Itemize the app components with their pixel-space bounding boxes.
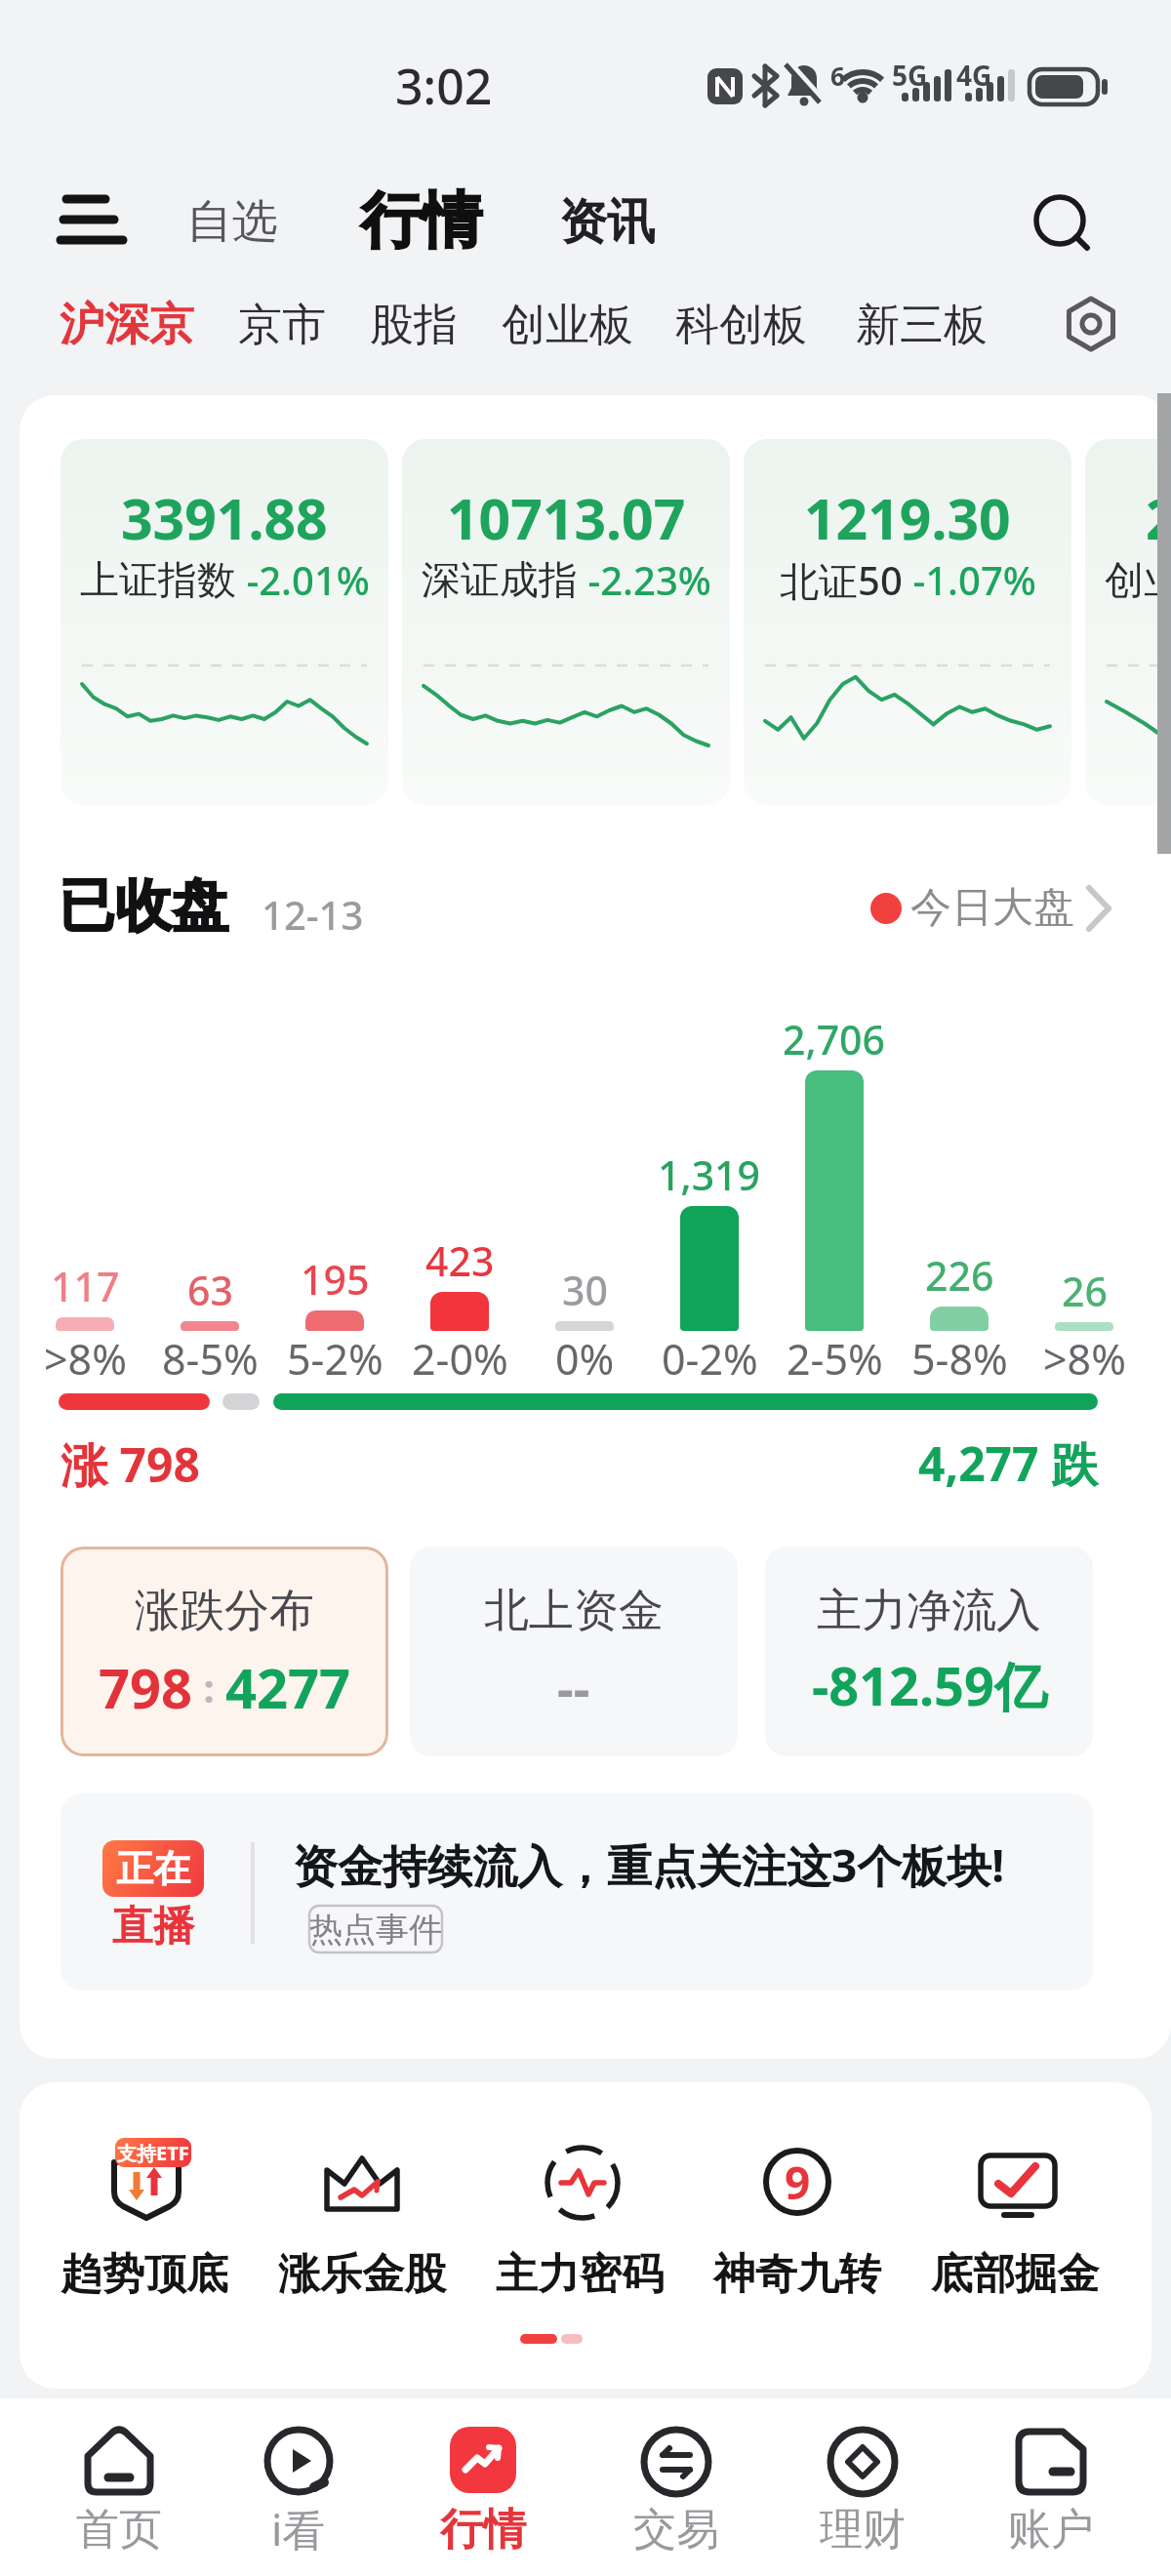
button[interactable] bbox=[482, 2117, 677, 2322]
staticText: 798 bbox=[99, 1650, 193, 1724]
button[interactable] bbox=[965, 2402, 1137, 2570]
button[interactable] bbox=[61, 193, 131, 248]
staticText: 创业板 bbox=[502, 298, 633, 353]
staticText: 5-8% bbox=[911, 1330, 1008, 1388]
button[interactable] bbox=[859, 873, 1132, 944]
staticText: 热点事件 bbox=[309, 1909, 442, 1951]
button[interactable] bbox=[700, 2117, 895, 2322]
staticText: 0% bbox=[555, 1330, 615, 1388]
button[interactable] bbox=[1062, 295, 1120, 353]
staticText: 已收盘 bbox=[59, 870, 228, 942]
staticText: 理财 bbox=[820, 2503, 906, 2556]
staticText: 账户 bbox=[1008, 2503, 1094, 2556]
staticText: 涨 798 bbox=[61, 1432, 200, 1497]
staticText: 423 bbox=[425, 1233, 495, 1288]
staticText: 2-0% bbox=[412, 1330, 508, 1388]
button[interactable]: 科创板 bbox=[633, 290, 848, 360]
staticText: 行情 bbox=[361, 182, 482, 259]
staticText: 科创板 bbox=[675, 298, 807, 353]
button[interactable]: 沪深京 bbox=[20, 289, 234, 361]
staticText: 0-2% bbox=[662, 1330, 758, 1388]
staticText: 新三板 bbox=[856, 298, 988, 353]
staticText: 2,706 bbox=[783, 1012, 886, 1067]
staticText: 神奇九转 bbox=[713, 2248, 881, 2301]
button[interactable]: 资讯 bbox=[509, 184, 705, 261]
staticText: 自选 bbox=[186, 193, 278, 251]
button[interactable]: 2179.92 bbox=[1085, 439, 1171, 805]
staticText: 30 bbox=[562, 1263, 608, 1317]
button[interactable] bbox=[213, 2402, 384, 2570]
button[interactable] bbox=[917, 2117, 1112, 2322]
staticText: 117 bbox=[51, 1259, 120, 1313]
staticText: 首页 bbox=[76, 2503, 162, 2556]
staticText: 4G bbox=[956, 57, 992, 94]
button[interactable]: 京市 bbox=[194, 290, 370, 360]
staticText: 4277 bbox=[225, 1650, 351, 1724]
staticText: 2-5% bbox=[787, 1330, 883, 1388]
staticText: 创业板指 bbox=[1105, 555, 1171, 604]
staticText: 沪深京 bbox=[60, 297, 194, 353]
button[interactable] bbox=[590, 2402, 762, 2570]
button[interactable]: 北上资金 bbox=[410, 1547, 738, 1756]
staticText: 上证指数 bbox=[80, 555, 236, 604]
button[interactable] bbox=[47, 2117, 242, 2322]
staticText: 195 bbox=[301, 1252, 370, 1307]
staticText: -812.59亿 bbox=[812, 1649, 1047, 1721]
staticText: 资金持续流入，重点关注这3个板块! bbox=[293, 1834, 1005, 1896]
staticText: : bbox=[193, 1661, 225, 1713]
button[interactable]: 新三板 bbox=[814, 290, 1029, 360]
staticText: 京市 bbox=[238, 298, 326, 353]
staticText: 63 bbox=[187, 1263, 233, 1317]
staticText: -2.23% bbox=[578, 553, 711, 606]
staticText: 226 bbox=[925, 1248, 994, 1303]
staticText: 底部掘金 bbox=[931, 2248, 1099, 2301]
button[interactable]: 10713.07 bbox=[402, 439, 730, 805]
button[interactable]: 创业板 bbox=[460, 290, 674, 360]
staticText: 8-5% bbox=[162, 1330, 259, 1388]
staticText: >8% bbox=[44, 1330, 127, 1388]
staticText: 2179.92 bbox=[1146, 480, 1171, 544]
staticText: 4,277 跌 bbox=[918, 1431, 1098, 1496]
button[interactable]: 自选 bbox=[135, 185, 330, 259]
staticText: 10713.07 bbox=[447, 480, 686, 544]
staticText: 主力净流入 bbox=[817, 1583, 1041, 1639]
staticText: i看 bbox=[271, 2500, 326, 2558]
button[interactable]: 涨跌分布 bbox=[61, 1547, 388, 1756]
button[interactable]: 主力净流入 bbox=[765, 1547, 1093, 1756]
button[interactable] bbox=[1029, 191, 1095, 258]
staticText: 12-13 bbox=[262, 888, 364, 941]
button[interactable]: 1219.30 bbox=[744, 439, 1071, 805]
staticText: 今日大盘 bbox=[910, 882, 1074, 934]
staticText: 26 bbox=[1062, 1264, 1108, 1318]
staticText: 主力密码 bbox=[496, 2248, 664, 2301]
staticText: 直播 bbox=[112, 1901, 194, 1952]
staticText: 5-2% bbox=[287, 1330, 384, 1388]
staticText: 深证成指 bbox=[422, 555, 578, 604]
button[interactable]: 正在 bbox=[61, 1793, 1093, 1991]
staticText: 涨乐金股 bbox=[278, 2248, 446, 2301]
staticText: >8% bbox=[1043, 1330, 1126, 1388]
staticText: 3:02 bbox=[395, 53, 493, 119]
button[interactable] bbox=[397, 2402, 569, 2570]
button[interactable] bbox=[33, 2402, 205, 2570]
staticText: 股指 bbox=[370, 298, 458, 353]
button[interactable]: 行情 bbox=[304, 172, 539, 268]
staticText: -2.01% bbox=[236, 553, 370, 606]
staticText: 北证50 bbox=[780, 553, 903, 607]
button[interactable] bbox=[777, 2402, 949, 2570]
staticText: 5G bbox=[892, 57, 928, 94]
staticText: 涨跌分布 bbox=[135, 1583, 314, 1639]
button[interactable]: 3391.88 bbox=[61, 439, 388, 805]
staticText: 资讯 bbox=[559, 192, 655, 253]
staticText: 6 bbox=[830, 59, 845, 93]
staticText: 1,319 bbox=[658, 1147, 761, 1202]
staticText: 趋势顶底 bbox=[61, 2248, 228, 2301]
staticText: 交易 bbox=[633, 2503, 719, 2556]
button[interactable]: 股指 bbox=[326, 290, 502, 360]
button[interactable] bbox=[264, 2117, 460, 2322]
staticText: 北上资金 bbox=[484, 1583, 664, 1639]
staticText: 1219.30 bbox=[804, 480, 1011, 544]
staticText: 3391.88 bbox=[121, 480, 328, 544]
staticText: 9 bbox=[785, 2152, 811, 2213]
staticText: 正在 bbox=[116, 1845, 190, 1892]
